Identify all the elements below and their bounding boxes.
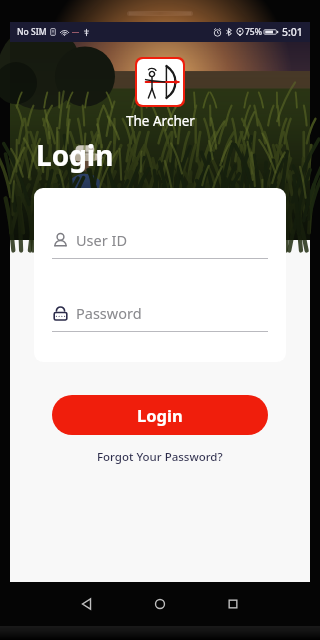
button[interactable]: Home <box>145 589 175 619</box>
staticText: Login <box>36 136 114 174</box>
button[interactable]: Back <box>72 589 102 619</box>
button[interactable]: User ID <box>52 230 268 259</box>
staticText: Login <box>137 404 183 426</box>
staticText: No SIM <box>17 26 47 38</box>
button[interactable]: Forgot Your Password? <box>91 447 229 467</box>
staticText: 75% <box>245 26 262 38</box>
button[interactable]: Login <box>52 395 268 435</box>
button[interactable]: Recents <box>218 589 248 619</box>
staticText: 5:01 <box>282 25 303 39</box>
staticText: Forgot Your Password? <box>97 449 223 465</box>
staticText: The Archer <box>126 112 195 130</box>
staticText: User ID <box>76 230 127 250</box>
button[interactable]: Password <box>52 303 268 332</box>
other: The Archer logo <box>137 59 183 105</box>
staticText: Password <box>76 303 142 323</box>
